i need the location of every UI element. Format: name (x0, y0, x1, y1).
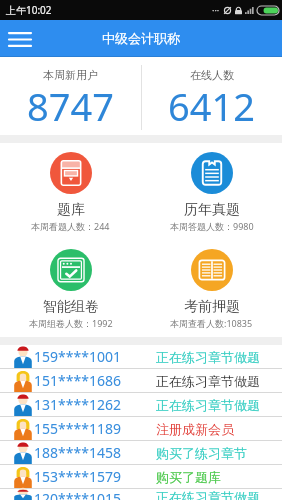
staticText: 中级会计职称 (102, 30, 180, 46)
staticText: 本周查看人数:10835 (170, 317, 253, 329)
staticText: 131****1262 (34, 395, 121, 414)
staticText: 6412 (168, 80, 255, 132)
staticText: 在线人数 (190, 68, 234, 82)
staticText: 注册成新会员 (156, 421, 234, 437)
button[interactable]: 131****1262 (0, 393, 282, 416)
staticText: 上午10:02 (6, 3, 52, 17)
button[interactable]: 本周新用户 (0, 57, 141, 135)
staticText: 本周看题人数：244 (31, 220, 110, 232)
staticText: 购买了练习章节 (156, 445, 247, 461)
staticText: 151****1686 (34, 371, 121, 390)
button[interactable]: 151****1686 (0, 369, 282, 392)
staticText: 购买了题库 (156, 469, 221, 485)
staticText: 正在练习章节做题 (156, 397, 260, 413)
staticText: 正在练习章节做题 (156, 349, 260, 365)
button[interactable]: 153****1579 (0, 465, 282, 488)
staticText: ··· (212, 4, 220, 16)
button[interactable]: 188****1458 (0, 441, 282, 464)
button[interactable]: 120****1015 (0, 489, 282, 500)
button[interactable]: 题库 (0, 143, 141, 240)
staticText: 正在练习章节做题 (156, 373, 260, 389)
staticText: 本周新用户 (43, 68, 98, 82)
staticText: 历年真题 (184, 201, 240, 219)
staticText: 188****1458 (34, 443, 121, 462)
staticText: 本周组卷人数：1992 (29, 317, 113, 329)
staticText: 智能组卷 (43, 298, 99, 316)
button[interactable]: 考前押题 (141, 240, 282, 337)
staticText: 153****1579 (34, 467, 121, 486)
staticText: 120****1015 (34, 489, 121, 500)
button[interactable]: Open navigation menu (4, 23, 36, 55)
button[interactable]: 在线人数 (141, 57, 282, 135)
button[interactable]: 历年真题 (141, 143, 282, 240)
staticText: 159****1001 (34, 347, 121, 366)
button[interactable]: 159****1001 (0, 345, 282, 368)
button[interactable]: 155****1189 (0, 417, 282, 440)
staticText: 题库 (57, 201, 85, 219)
staticText: 考前押题 (184, 298, 240, 316)
staticText: 正在练习章节做题 (156, 489, 260, 500)
staticText: 8747 (27, 80, 114, 132)
staticText: 155****1189 (34, 419, 121, 438)
staticText: 本周答题人数：9980 (170, 220, 254, 232)
button[interactable]: 智能组卷 (0, 240, 141, 337)
